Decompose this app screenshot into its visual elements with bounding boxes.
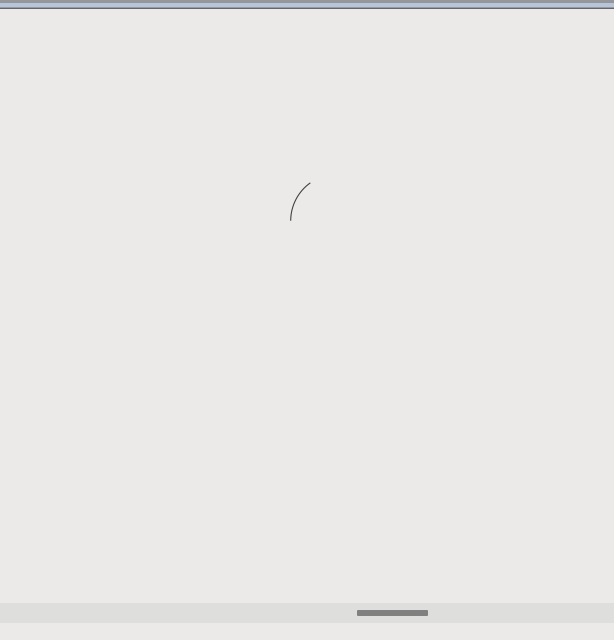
button[interactable]: Toolbar control (0, 603, 428, 616)
